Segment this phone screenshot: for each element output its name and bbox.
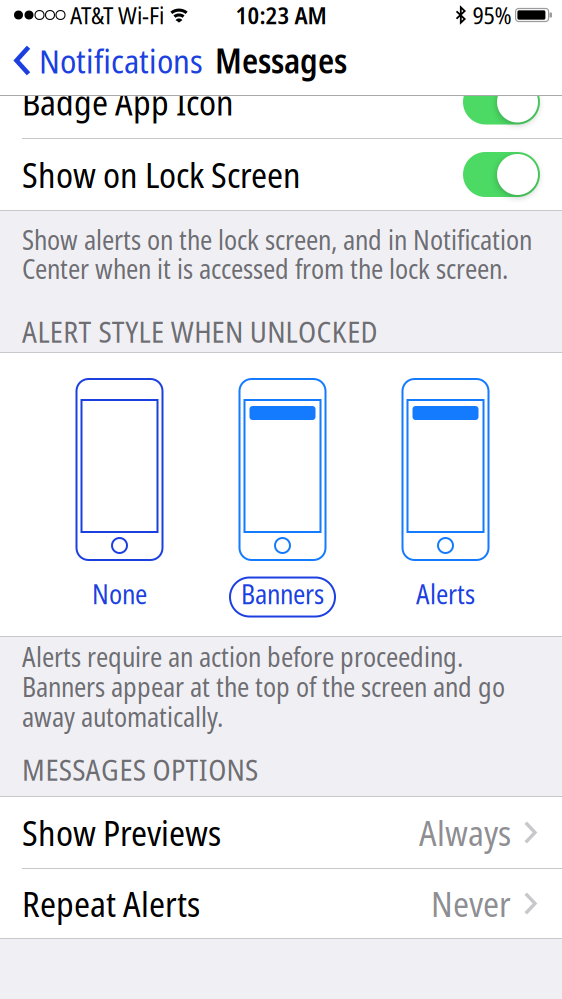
staticText: Center when it is accessed from the lock… (22, 251, 508, 286)
staticText: Show Previews (22, 809, 221, 855)
staticText: Messages (215, 38, 347, 83)
staticText: Alerts require an action before proceedi… (22, 639, 463, 674)
staticText: 10:23 AM (235, 0, 326, 31)
button[interactable]: Banners (201, 379, 364, 617)
staticText: MESSAGES OPTIONS (22, 750, 258, 789)
button[interactable]: Show on Lock Screen (463, 152, 540, 197)
button[interactable]: Badge App Icon (463, 79, 540, 124)
button[interactable]: Repeat Alerts (0, 869, 562, 938)
button[interactable]: Alerts (364, 379, 527, 617)
staticText: Badge App Icon (22, 79, 234, 125)
staticText: AT&T Wi-Fi (70, 0, 164, 31)
staticText: Banners (241, 576, 324, 612)
button[interactable]: Show Previews (0, 797, 562, 868)
staticText: Always (419, 809, 511, 855)
staticText: Show alerts on the lock screen, and in N… (22, 222, 532, 257)
staticText: ALERT STYLE WHEN UNLOCKED (22, 312, 378, 351)
staticText: Alerts (416, 576, 475, 612)
button[interactable]: Back (0, 40, 203, 85)
staticText: Repeat Alerts (22, 880, 200, 926)
staticText: Banners appear at the top of the screen … (22, 669, 505, 704)
staticText: None (92, 576, 147, 612)
staticText: 95% (473, 0, 512, 31)
staticText: Show on Lock Screen (22, 151, 301, 197)
staticText: Never (431, 880, 511, 926)
staticText: away automatically. (22, 699, 223, 734)
staticText: Notifications (39, 38, 203, 83)
button[interactable]: None (38, 379, 201, 617)
